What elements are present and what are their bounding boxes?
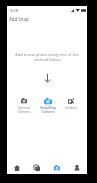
button[interactable]: Camera — [47, 162, 67, 174]
button[interactable]: Discover — [27, 162, 47, 174]
staticText: SnapMap Camera — [40, 105, 56, 114]
staticText: System Camera — [17, 105, 31, 114]
button[interactable]: Gallery — [60, 97, 82, 110]
button[interactable]: Home — [7, 162, 27, 174]
staticText: Add a new photo using one of the method … — [15, 52, 79, 62]
button[interactable]: System Camera — [12, 97, 36, 114]
staticText: Add Snap — [9, 16, 29, 22]
button[interactable]: Profile — [67, 162, 87, 174]
staticText: Gallery — [65, 105, 77, 110]
other: Down arrow — [44, 74, 51, 82]
button[interactable]: SnapMap Camera — [36, 97, 60, 114]
staticText: 3:08 — [10, 8, 18, 13]
